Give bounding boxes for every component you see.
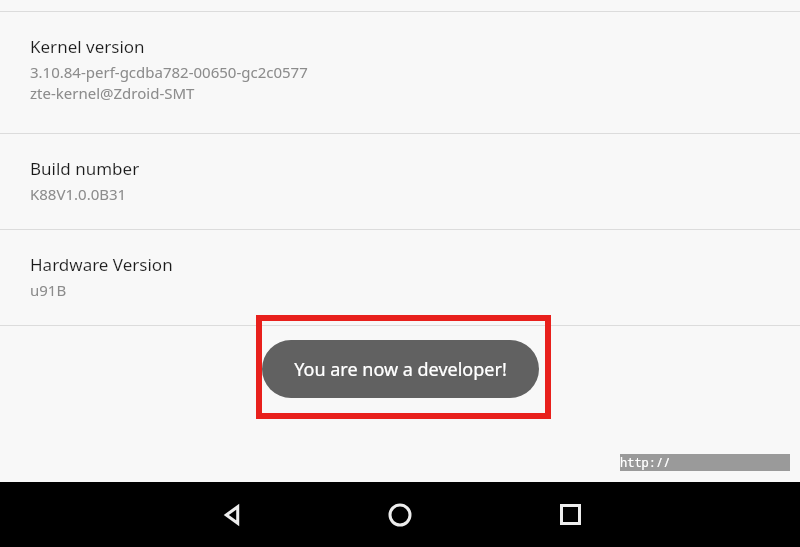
button[interactable]: Back: [202, 482, 262, 547]
button[interactable]: Kernel version: [0, 12, 800, 133]
staticText: Kernel version: [30, 35, 145, 58]
staticText: http://adariman.tistory.com: [620, 454, 790, 471]
staticText: Build number: [30, 157, 140, 180]
button[interactable]: Recent apps: [540, 482, 600, 547]
staticText: 3.10.84-perf-gcdba782-00650-gc2c0577: [30, 62, 308, 82]
button[interactable]: You are now a developer!: [262, 340, 539, 398]
staticText: K88V1.0.0B31: [30, 184, 127, 204]
staticText: Hardware Version: [30, 253, 173, 276]
button[interactable]: Hardware Version: [0, 230, 800, 325]
staticText: zte-kernel@Zdroid-SMT: [30, 83, 195, 103]
button[interactable]: Build number: [0, 134, 800, 229]
button[interactable]: Home: [370, 482, 430, 547]
staticText: You are now a developer!: [294, 357, 507, 382]
staticText: u91B: [30, 280, 67, 300]
